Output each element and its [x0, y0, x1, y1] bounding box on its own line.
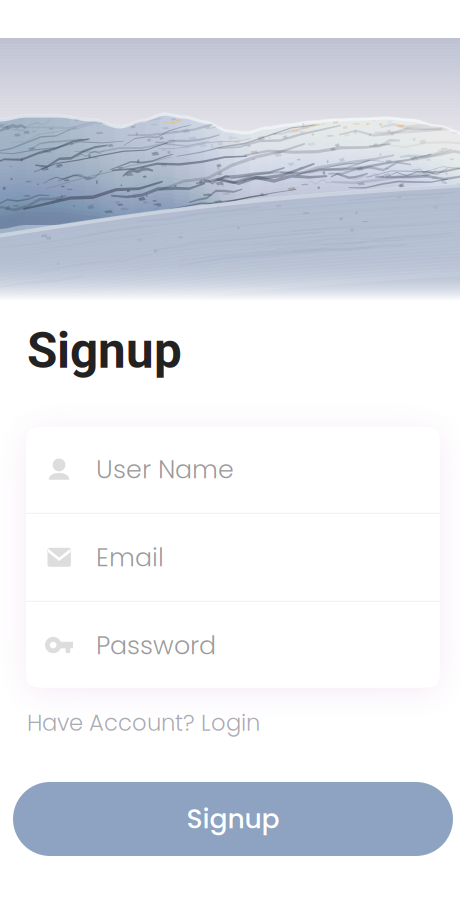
staticText: Have Account? Login — [27, 707, 260, 739]
button[interactable]: Password — [26, 602, 440, 689]
button[interactable]: User Name — [26, 426, 440, 513]
staticText: User Name — [96, 452, 234, 487]
staticText: Password — [96, 628, 216, 663]
button[interactable]: Have Account? Login — [0, 706, 300, 740]
staticText: Signup — [186, 800, 279, 838]
staticText: Signup — [27, 322, 182, 380]
button[interactable]: Email — [26, 514, 440, 601]
staticText: Email — [96, 540, 164, 575]
button[interactable]: Signup — [0, 782, 453, 856]
